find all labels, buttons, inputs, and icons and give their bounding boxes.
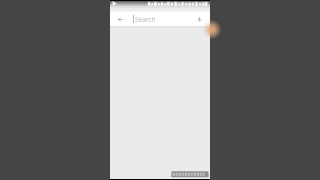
button[interactable]: Back [110, 10, 131, 26]
button[interactable]: Voice search [192, 10, 206, 26]
staticText: Search [135, 15, 156, 24]
